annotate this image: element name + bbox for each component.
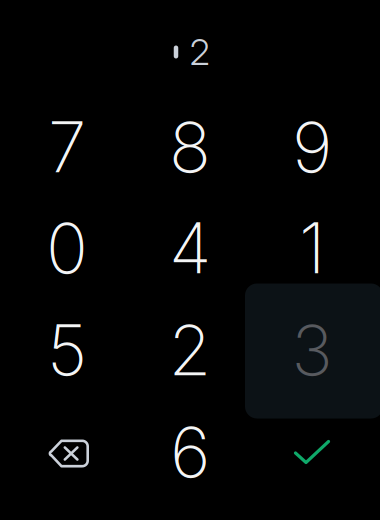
staticText: 4 — [169, 206, 211, 290]
staticText: 6 — [170, 410, 210, 494]
button[interactable]: Delete — [1, 385, 132, 519]
button[interactable]: 3 — [246, 283, 377, 417]
button[interactable]: 5 — [1, 283, 132, 417]
staticText: 8 — [169, 105, 211, 189]
button[interactable]: 1 — [246, 181, 377, 315]
staticText: 2 — [168, 308, 211, 392]
staticText: 5 — [47, 308, 87, 392]
button[interactable]: 2 — [124, 283, 255, 417]
button[interactable]: 6 — [124, 385, 255, 519]
button[interactable]: Confirm — [246, 385, 377, 519]
button[interactable]: 4 — [124, 181, 255, 315]
staticText: 1 — [299, 206, 325, 290]
staticText: 7 — [48, 105, 86, 189]
staticText: 2 — [189, 30, 210, 74]
staticText: 0 — [46, 206, 88, 290]
button[interactable]: 7 — [1, 80, 132, 214]
staticText: 3 — [291, 308, 332, 392]
button[interactable]: 8 — [124, 80, 255, 214]
staticText: 9 — [292, 105, 332, 189]
button[interactable]: 9 — [246, 80, 377, 214]
button[interactable]: 0 — [1, 181, 132, 315]
